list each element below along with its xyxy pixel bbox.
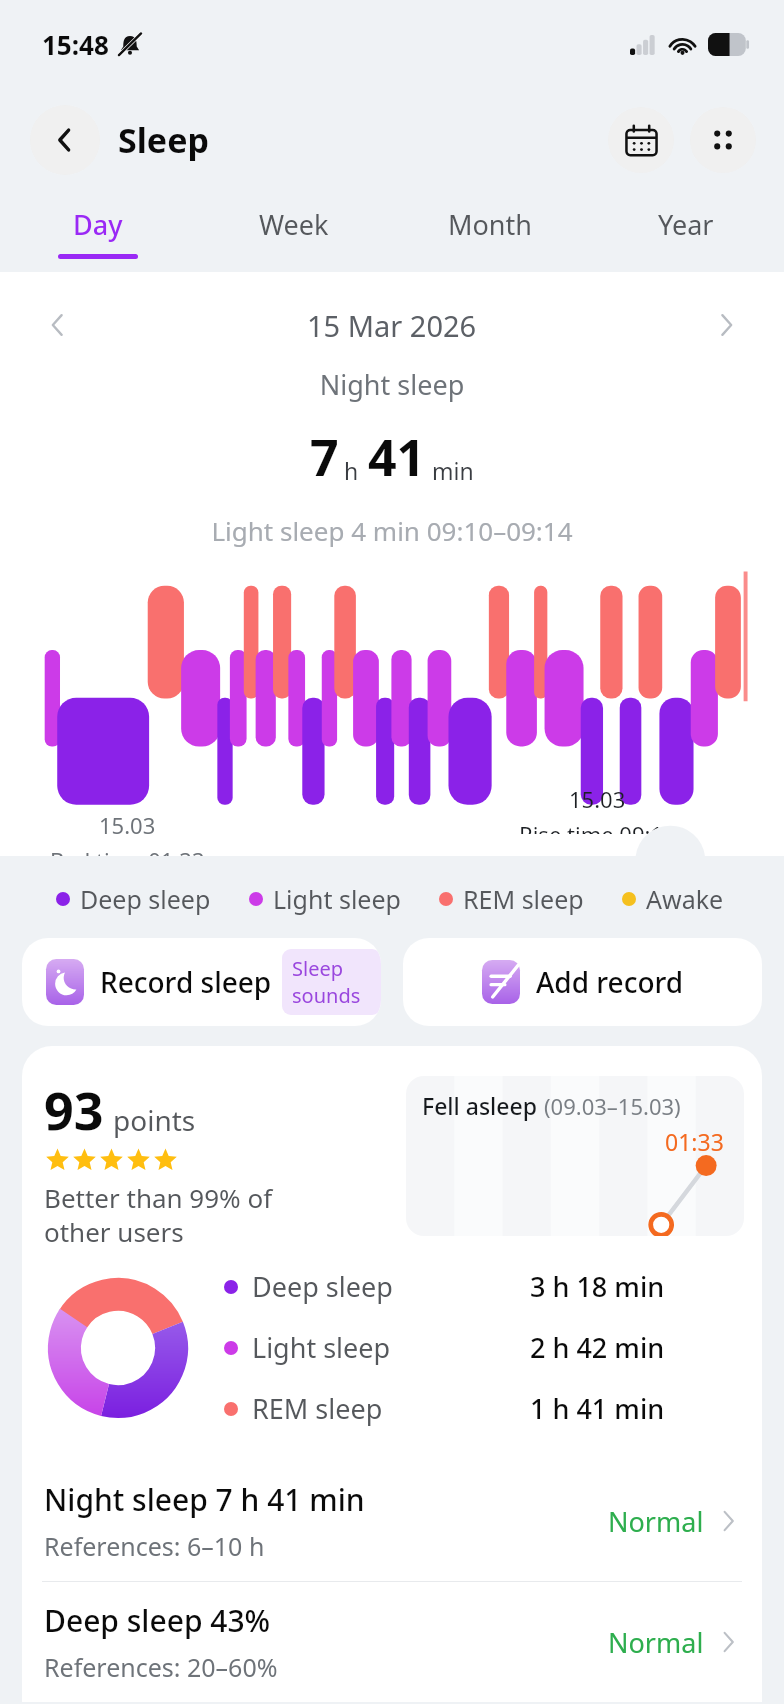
staticText: Day bbox=[73, 206, 123, 243]
button[interactable]: Fell asleep bbox=[406, 1076, 744, 1236]
staticText: Light sleep bbox=[252, 1329, 391, 1366]
button[interactable]: Calendar bbox=[608, 107, 674, 173]
staticText: References: 6–10 h bbox=[44, 1529, 265, 1563]
staticText: 7 bbox=[310, 423, 339, 491]
staticText: (09.03–15.03) bbox=[544, 1091, 681, 1121]
staticText: Fell asleep bbox=[422, 1090, 537, 1121]
staticText: REM sleep bbox=[463, 882, 584, 916]
staticText: points bbox=[113, 1101, 196, 1139]
staticText: Normal bbox=[608, 1503, 704, 1540]
staticText: 01:33 bbox=[665, 1126, 724, 1157]
button[interactable]: Add record bbox=[403, 938, 762, 1026]
staticText: REM sleep bbox=[252, 1390, 383, 1427]
button[interactable]: Week bbox=[196, 192, 392, 272]
staticText: 15.03 bbox=[99, 810, 156, 840]
staticText: min bbox=[432, 455, 474, 486]
staticText: 3 h 18 min bbox=[530, 1268, 665, 1305]
staticText: 1 h 41 min bbox=[530, 1390, 665, 1427]
staticText: 93 bbox=[44, 1074, 104, 1145]
staticText: h bbox=[344, 455, 359, 486]
staticText: Deep sleep 43% bbox=[44, 1600, 271, 1641]
staticText: Month bbox=[448, 206, 532, 243]
staticText: 15 Mar 2026 bbox=[307, 306, 477, 345]
staticText: 2 h 42 min bbox=[530, 1329, 665, 1366]
staticText: Year bbox=[658, 206, 714, 243]
staticText: Week bbox=[259, 206, 329, 243]
staticText: Bed time 01:33 bbox=[50, 845, 205, 856]
staticText: 15.03 bbox=[569, 784, 626, 814]
button[interactable]: Next day bbox=[700, 299, 752, 351]
button[interactable]: Previous day bbox=[32, 299, 84, 351]
staticText: 41 bbox=[368, 423, 426, 491]
button[interactable]: Back bbox=[30, 105, 100, 175]
button[interactable]: More options bbox=[690, 107, 756, 173]
staticText: Normal bbox=[608, 1624, 704, 1661]
staticText: References: 20–60% bbox=[44, 1650, 278, 1684]
staticText: Sleep sounds bbox=[292, 955, 371, 1009]
staticText: 15:48 bbox=[42, 27, 109, 62]
staticText: Awake bbox=[646, 882, 724, 916]
staticText: Deep sleep bbox=[252, 1268, 393, 1305]
button[interactable]: Day bbox=[0, 192, 196, 272]
staticText: Light sleep 4 min 09:10–09:14 bbox=[0, 513, 784, 548]
staticText: Light sleep bbox=[273, 882, 401, 916]
button[interactable]: Record sleep bbox=[22, 938, 381, 1026]
staticText: Night sleep 7 h 41 min bbox=[44, 1479, 365, 1520]
staticText: Add record bbox=[536, 963, 684, 1001]
button[interactable]: Deep sleep 43% bbox=[22, 1582, 762, 1702]
staticText: Deep sleep bbox=[80, 882, 211, 916]
staticText: Rise time 09:14 bbox=[519, 819, 676, 834]
staticText: Sleep bbox=[118, 117, 209, 163]
button[interactable]: Year bbox=[588, 192, 784, 272]
staticText: Record sleep bbox=[100, 963, 272, 1001]
button[interactable]: Month bbox=[392, 192, 588, 272]
staticText: Better than 99% of other users bbox=[44, 1180, 273, 1250]
button[interactable]: Night sleep 7 h 41 min bbox=[22, 1461, 762, 1581]
staticText: Night sleep bbox=[0, 366, 784, 403]
